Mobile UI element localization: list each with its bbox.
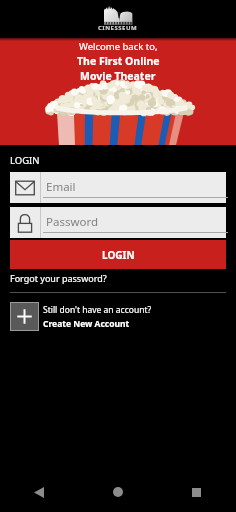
staticText: Password xyxy=(46,214,99,230)
staticText: LOGIN xyxy=(102,248,135,262)
button[interactable]: LOGIN xyxy=(10,240,226,269)
button[interactable]: Email xyxy=(10,172,226,203)
button[interactable]: Home xyxy=(78,472,157,512)
staticText: CINESSEUM xyxy=(98,24,138,32)
staticText: Movie Theater xyxy=(80,69,156,83)
staticText: Email xyxy=(46,179,76,195)
staticText: LOGIN xyxy=(10,154,40,167)
button[interactable]: Still don't have an account? xyxy=(10,302,236,331)
staticText: Create New Account xyxy=(43,318,130,330)
staticText: Welcome back to, xyxy=(79,40,158,53)
staticText: Forgot your password? xyxy=(10,272,107,284)
staticText: Still don't have an account? xyxy=(43,304,152,316)
button[interactable]: Recent apps xyxy=(157,472,236,512)
button[interactable]: Forgot your password? xyxy=(10,272,107,284)
staticText: The First Online xyxy=(77,54,160,68)
button[interactable]: Back xyxy=(0,472,78,512)
button[interactable]: Password xyxy=(10,207,226,238)
